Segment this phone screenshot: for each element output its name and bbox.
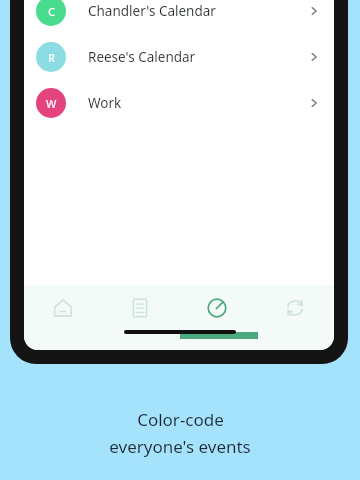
button[interactable]: W [24,80,334,126]
staticText: R [48,50,55,65]
button[interactable]: Home [24,285,101,331]
button[interactable]: Sync [256,285,334,331]
staticText: everyone's events [109,435,251,458]
button[interactable]: C [24,0,334,34]
staticText: Color-code [137,408,224,431]
button[interactable]: Agenda [101,285,178,331]
staticText: Work [88,94,122,112]
staticText: Chandler's Calendar [88,2,216,20]
staticText: C [48,4,55,19]
staticText: W [46,96,57,111]
button[interactable]: Tasks [178,285,256,331]
button[interactable]: R [24,34,334,80]
staticText: Reese's Calendar [88,48,196,66]
